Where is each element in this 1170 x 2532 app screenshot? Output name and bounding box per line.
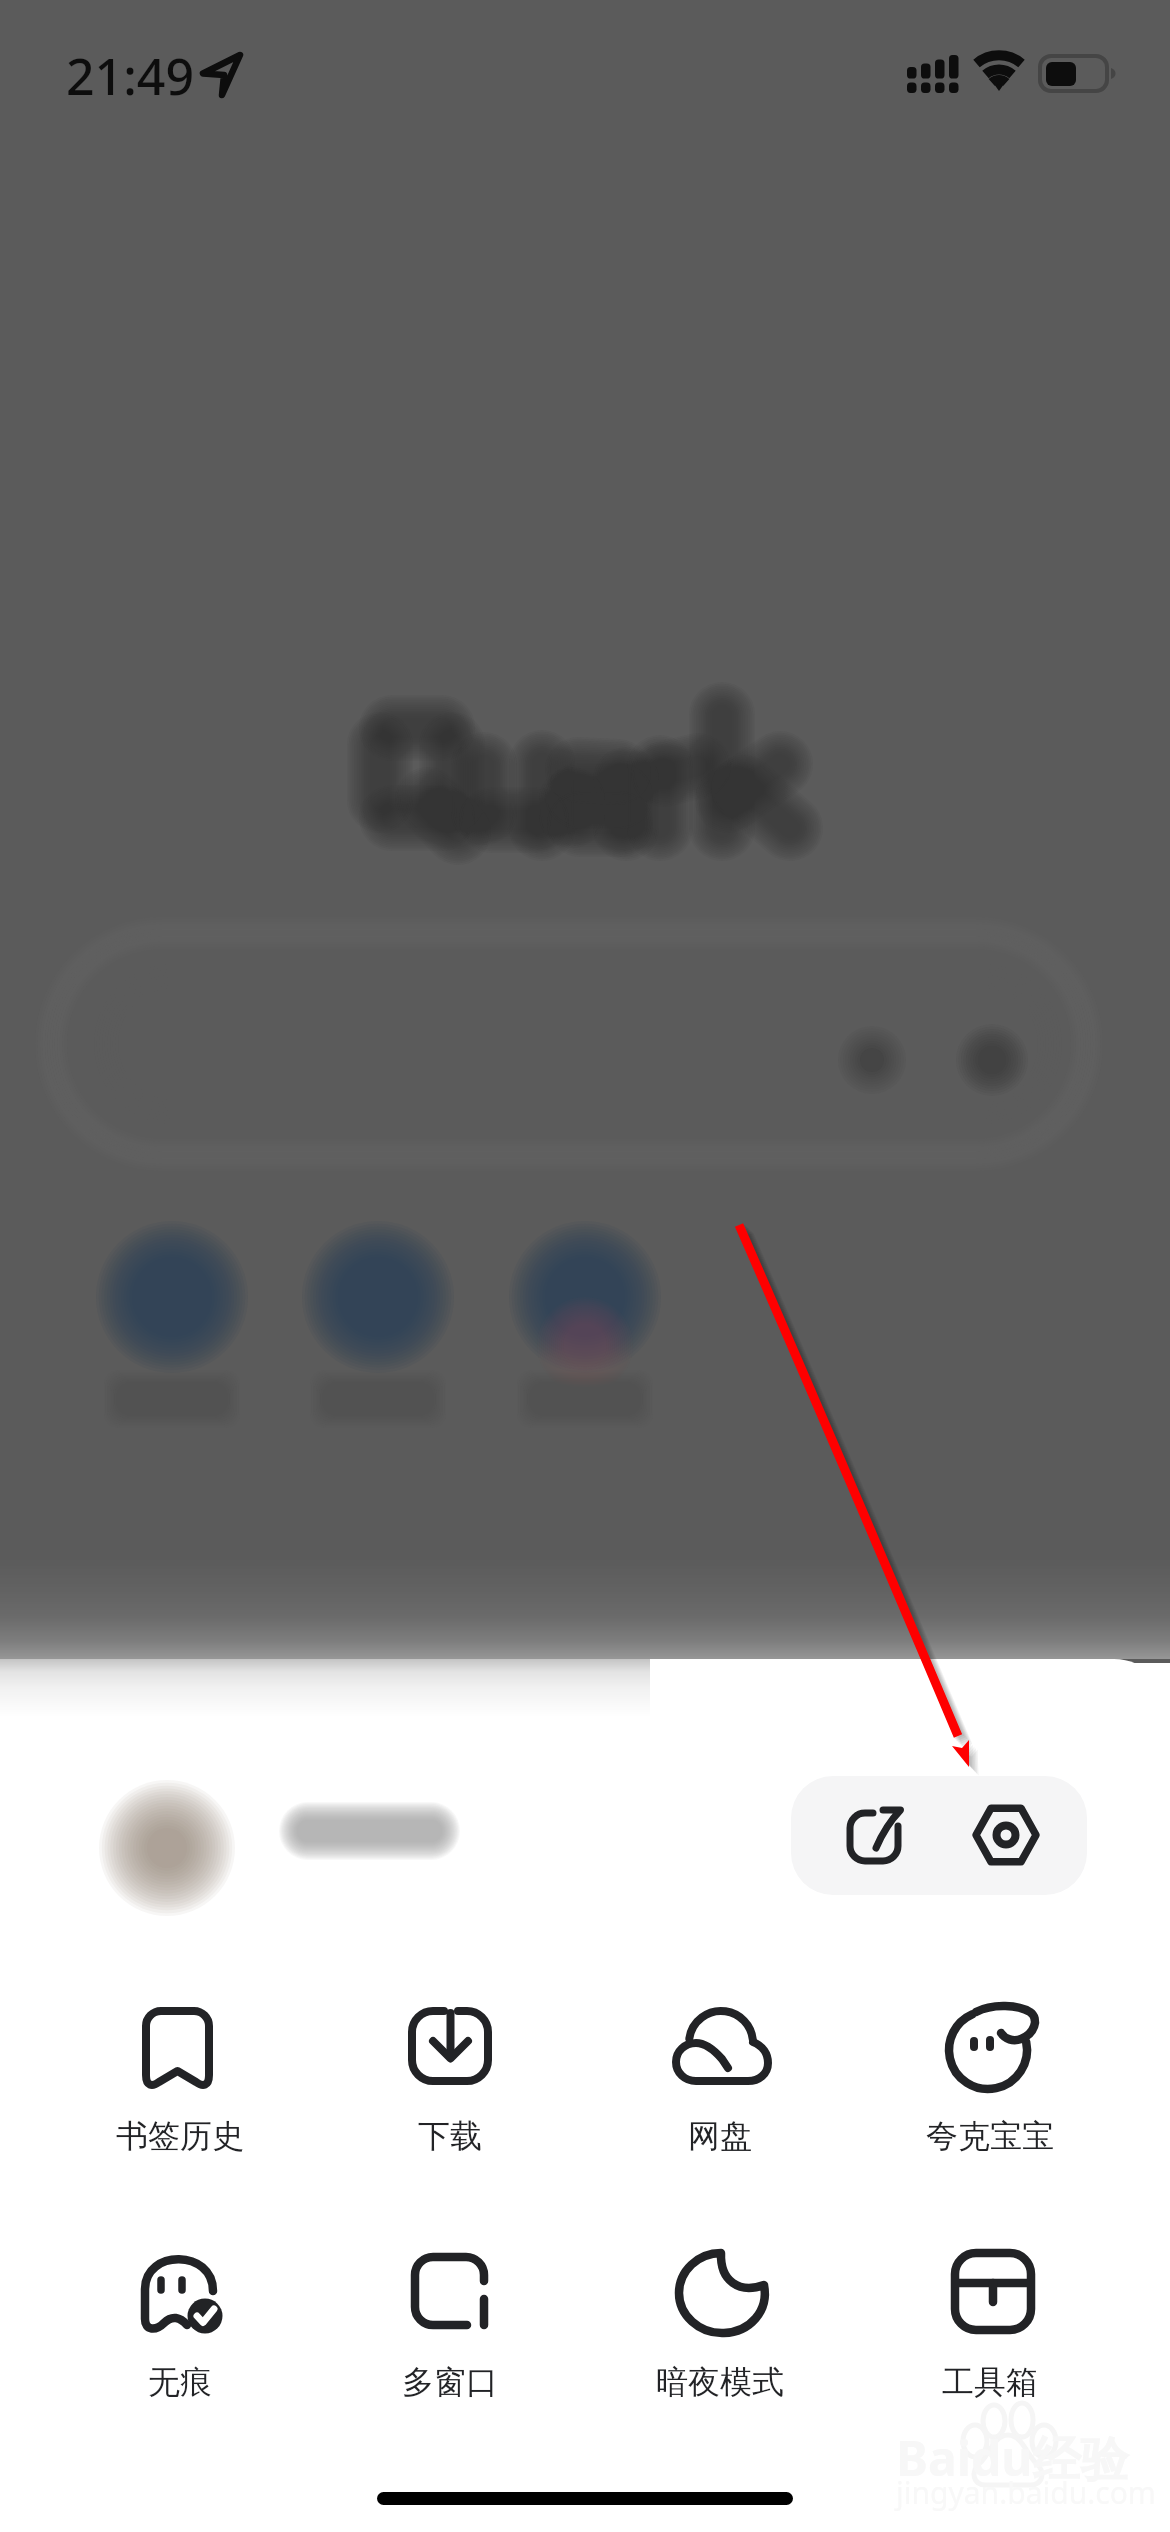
staticText: 无痕 xyxy=(148,2362,212,2402)
button[interactable]: 无痕 xyxy=(45,2231,315,2431)
button[interactable]: Edit xyxy=(791,1776,939,1895)
button[interactable]: 多窗口 xyxy=(315,2231,585,2431)
staticText: 工具箱 xyxy=(942,2362,1038,2402)
staticText: 暗夜模式 xyxy=(656,2362,784,2402)
staticText: Baidu经验 xyxy=(896,2425,1129,2491)
button[interactable]: 下载 xyxy=(315,1985,585,2185)
staticText: 书签历史 xyxy=(116,2116,244,2156)
button[interactable]: 暗夜模式 xyxy=(585,2231,855,2431)
staticText: 下载 xyxy=(418,2116,482,2156)
button[interactable]: 网盘 xyxy=(585,1985,855,2185)
staticText: 夸克宝宝 xyxy=(926,2116,1054,2156)
staticText: 网盘 xyxy=(688,2116,752,2156)
staticText: 多窗口 xyxy=(402,2362,498,2402)
button[interactable]: Settings xyxy=(939,1776,1087,1895)
button[interactable]: 工具箱 xyxy=(855,2231,1125,2431)
staticText: jingyan.baidu.com xyxy=(896,2472,1156,2513)
button[interactable]: 夸克宝宝 xyxy=(855,1985,1125,2185)
button[interactable]: 书签历史 xyxy=(45,1985,315,2185)
staticText: 21:49 xyxy=(66,42,194,110)
